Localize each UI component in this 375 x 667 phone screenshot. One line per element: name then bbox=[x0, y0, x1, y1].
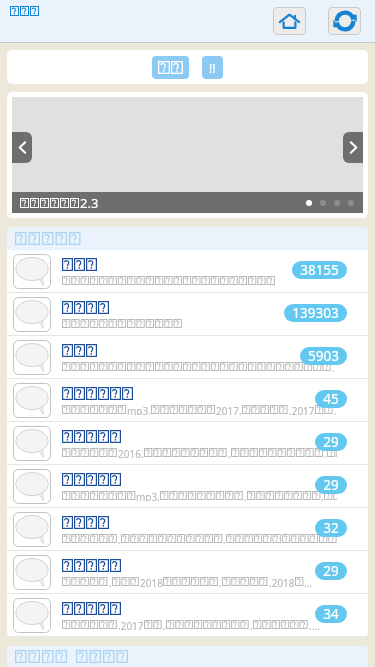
staticText: , bbox=[244, 490, 247, 501]
button[interactable]: ... bbox=[7, 336, 368, 379]
staticText: ... bbox=[304, 576, 313, 587]
button[interactable]: Next bbox=[343, 132, 363, 163]
staticText: 34 bbox=[323, 605, 339, 623]
button[interactable]: , bbox=[7, 508, 368, 551]
staticText: ... bbox=[334, 404, 337, 415]
staticText: 38155 bbox=[300, 261, 339, 279]
staticText: , bbox=[109, 576, 112, 587]
button[interactable]: Home bbox=[273, 7, 306, 35]
button[interactable]: 38155 bbox=[7, 250, 368, 293]
staticText: 29 bbox=[323, 476, 339, 494]
button[interactable] bbox=[152, 56, 189, 79]
staticText: 29 bbox=[323, 433, 339, 451]
staticText: ,2018 bbox=[269, 576, 295, 587]
staticText: , bbox=[228, 447, 231, 458]
button[interactable]: , bbox=[7, 551, 368, 594]
staticText: 5903 bbox=[308, 347, 339, 365]
staticText: , bbox=[219, 576, 222, 587]
staticText: 139303 bbox=[292, 304, 339, 322]
staticText: , bbox=[223, 533, 226, 544]
staticText: 2017, bbox=[216, 404, 242, 415]
button[interactable]: mp3, bbox=[7, 379, 368, 422]
staticText: mp3, bbox=[127, 404, 151, 415]
button[interactable]: ,2017 bbox=[7, 594, 368, 637]
staticText: , bbox=[321, 490, 324, 501]
staticText: , bbox=[309, 619, 312, 630]
staticText: ... bbox=[312, 619, 321, 630]
button[interactable]: !! bbox=[202, 56, 223, 79]
staticText: , bbox=[324, 447, 327, 458]
staticText: !! bbox=[209, 60, 216, 76]
button[interactable]: 139303 bbox=[7, 293, 368, 336]
staticText: ,2017 bbox=[289, 404, 315, 415]
staticText: , bbox=[118, 533, 121, 544]
staticText: 2.3 bbox=[80, 194, 99, 212]
staticText: 29 bbox=[323, 562, 339, 580]
button[interactable]: Refresh bbox=[328, 7, 361, 35]
staticText: mp3, bbox=[136, 490, 160, 501]
staticText: 32 bbox=[323, 519, 339, 537]
button[interactable]: mp3, bbox=[7, 465, 368, 508]
staticText: ... bbox=[332, 361, 337, 372]
button[interactable]: 2016, bbox=[7, 422, 368, 465]
staticText: 45 bbox=[323, 390, 339, 408]
staticText: , bbox=[250, 619, 253, 630]
button[interactable] bbox=[7, 646, 368, 667]
button[interactable]: Previous bbox=[12, 132, 32, 163]
staticText: 2016, bbox=[118, 447, 144, 458]
staticText: 2018 bbox=[140, 576, 163, 587]
staticText: , bbox=[163, 619, 166, 630]
button[interactable] bbox=[7, 227, 368, 250]
staticText: ,2017 bbox=[118, 619, 144, 630]
